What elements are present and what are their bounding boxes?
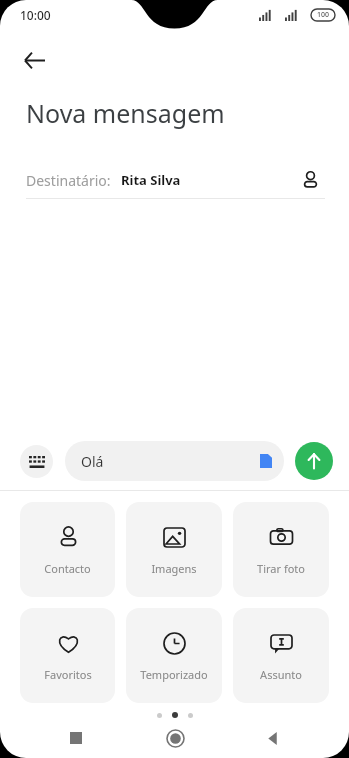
button[interactable]: Enviar bbox=[295, 442, 333, 480]
button[interactable]: Teclado bbox=[20, 445, 53, 478]
button[interactable]: Assunto bbox=[233, 608, 329, 703]
button[interactable]: Olá bbox=[65, 441, 284, 481]
button[interactable]: Recentes bbox=[54, 718, 98, 758]
staticText: Olá bbox=[81, 452, 104, 471]
button[interactable]: Início bbox=[153, 718, 197, 758]
button[interactable]: Tirar foto bbox=[233, 502, 329, 597]
button[interactable]: Voltar bbox=[12, 38, 56, 82]
staticText: Favoritos bbox=[44, 667, 92, 682]
button[interactable]: Imagens bbox=[126, 502, 222, 597]
staticText: Contacto bbox=[44, 561, 91, 576]
staticText: Assunto bbox=[260, 667, 302, 682]
button[interactable]: Destinatário: bbox=[26, 162, 325, 198]
staticText: 10:00 bbox=[20, 7, 51, 23]
button[interactable]: Contacto bbox=[20, 502, 115, 597]
button[interactable]: Temporizado bbox=[126, 608, 222, 703]
button[interactable]: Escolher contacto bbox=[295, 165, 325, 195]
staticText: Nova mensagem bbox=[26, 96, 225, 130]
staticText: 100 bbox=[317, 10, 330, 20]
staticText: Rita Silva bbox=[121, 171, 181, 189]
staticText: Destinatário: bbox=[26, 171, 111, 190]
button[interactable]: Favoritos bbox=[20, 608, 115, 703]
staticText: Imagens bbox=[151, 561, 197, 576]
staticText: Temporizado bbox=[140, 667, 208, 682]
staticText: Tirar foto bbox=[257, 561, 305, 576]
button[interactable]: Voltar bbox=[251, 718, 295, 758]
